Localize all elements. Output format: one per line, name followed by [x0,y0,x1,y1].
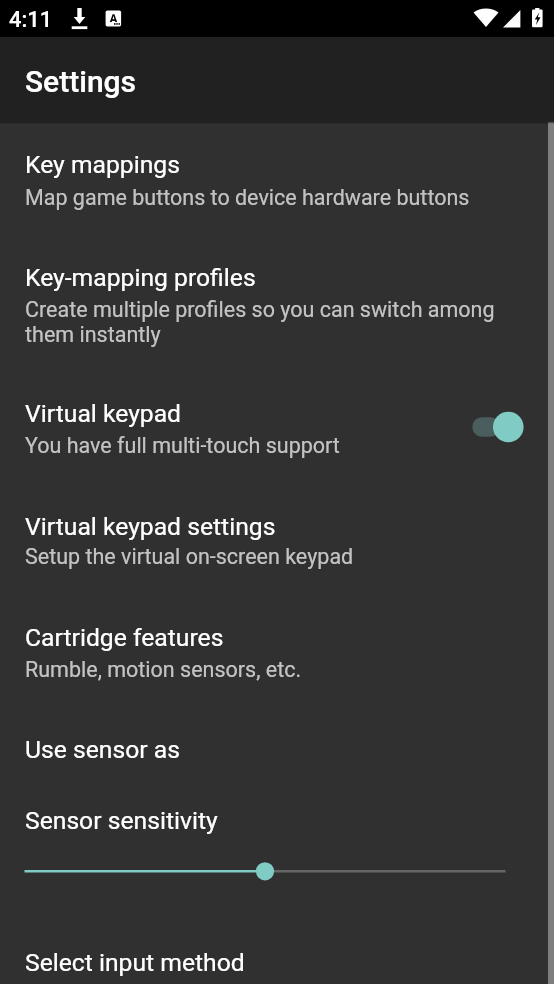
button[interactable]: Select input method [0,936,554,984]
staticText: Key-mapping profiles [25,263,256,292]
other: Battery charging [532,8,544,28]
button[interactable]: Virtual keypad [0,388,554,484]
button[interactable]: Key mappings [0,138,554,234]
other: Mobile signal [503,10,521,28]
button[interactable]: Cartridge features [0,611,554,707]
staticText: Key mappings [25,150,180,179]
staticText: You have full multi-touch support [25,433,505,458]
staticText: Cartridge features [25,623,224,652]
other: Wi-Fi [473,9,499,27]
staticText: Rumble, motion sensors, etc. [25,657,505,682]
staticText: 4:11 [9,7,53,33]
staticText: Select input method [25,948,245,977]
staticText: Use sensor as [25,735,180,764]
staticText: Map game buttons to device hardware butt… [25,185,505,210]
staticText: Virtual keypad [25,399,182,428]
button[interactable]: Key-mapping profiles [0,252,554,372]
staticText: Setup the virtual on-screen keypad [25,544,505,569]
staticText: Create multiple profiles so you can swit… [25,297,503,347]
button[interactable]: Virtual keypad enabled [460,403,524,451]
staticText: Sensor sensitivity [25,806,218,835]
button[interactable]: Virtual keypad settings [0,500,554,596]
other: Download [71,7,88,30]
staticText: Virtual keypad settings [25,512,276,541]
button[interactable]: Sensor sensitivity slider [0,847,554,895]
staticText: Settings [25,64,137,99]
button[interactable]: Sensor sensitivity [0,794,554,850]
button[interactable]: Use sensor as [0,723,554,779]
other: Captions [105,10,122,28]
